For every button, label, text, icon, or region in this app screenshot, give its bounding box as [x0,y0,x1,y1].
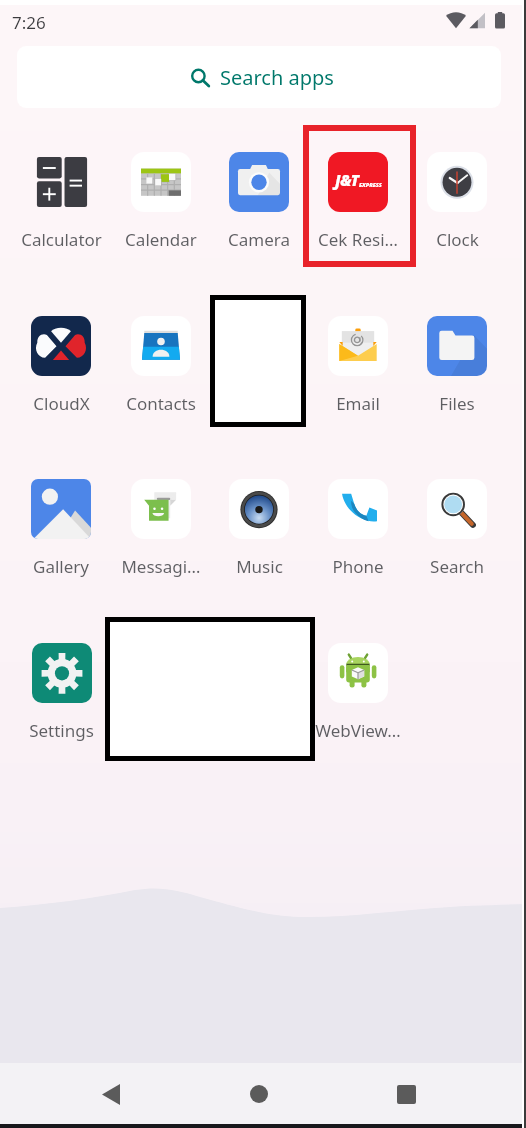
button[interactable]: Clock [408,142,506,250]
button[interactable]: Settings [12,633,110,741]
button[interactable]: Messagi… [112,469,210,577]
staticText: Gallery [33,555,89,577]
button[interactable]: Back [87,1070,135,1118]
button[interactable]: Calendar [112,142,210,250]
staticText: Clock [436,228,479,250]
staticText: WebView… [315,719,401,741]
staticText: Search apps [220,64,334,91]
button[interactable]: Search apps [17,46,501,108]
button[interactable]: Contacts [112,306,210,414]
staticText: Messagi… [121,555,201,577]
button[interactable]: Search [408,469,506,577]
button[interactable]: Files [408,306,506,414]
staticText: Phone [332,555,384,577]
staticText: Settings [29,719,94,741]
staticText: Calendar [125,228,197,250]
staticText: Calculator [21,228,102,250]
staticText: Camera [228,228,290,250]
button[interactable]: Email [309,306,407,414]
staticText: J&T [335,170,359,190]
staticText: 7:26 [12,11,46,34]
staticText: Cek Resi… [318,228,398,250]
staticText: Files [439,392,475,414]
button[interactable]: Home [235,1070,283,1118]
button[interactable]: WebView… [309,633,407,741]
button[interactable]: J&T [309,142,407,250]
button[interactable]: Gallery [12,469,110,577]
button[interactable]: Music [210,469,308,577]
button[interactable]: Calculator [12,142,110,250]
staticText: Contacts [126,392,196,414]
button[interactable]: Camera [210,142,308,250]
staticText: Search [430,555,484,577]
button[interactable]: Phone [309,469,407,577]
staticText: CloudX [33,392,90,414]
staticText: Music [236,555,283,577]
button[interactable]: CloudX [12,306,110,414]
staticText: EXPRESS [359,181,382,188]
staticText: Email [336,392,380,414]
button[interactable]: Recent apps [382,1070,430,1118]
